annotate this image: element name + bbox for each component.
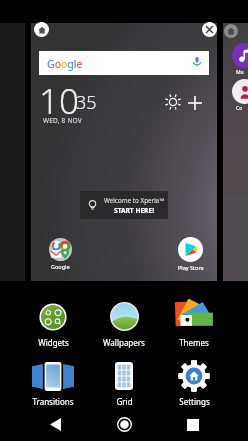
staticText: Grid [116, 396, 133, 407]
button[interactable]: Recent apps [173, 408, 213, 441]
staticText: 35 [76, 90, 97, 115]
button[interactable]: Transitions [18, 356, 88, 408]
button[interactable]: Grid [89, 356, 159, 408]
staticText: WED, 8 NOV [43, 116, 82, 125]
button[interactable]: Home [104, 408, 144, 441]
staticText: Google [51, 263, 70, 270]
button[interactable]: Back [35, 408, 75, 441]
button[interactable]: Next page [223, 23, 248, 281]
button[interactable]: Settings [159, 355, 229, 407]
staticText: Co [236, 105, 243, 112]
button[interactable]: Widgets [18, 297, 88, 349]
button[interactable]: Wallpapers [89, 296, 159, 348]
staticText: Transitions [32, 396, 74, 407]
button[interactable]: Google [39, 51, 209, 75]
staticText: START HERE! [114, 206, 154, 215]
staticText: Mu [236, 69, 244, 76]
button[interactable]: Google [44, 238, 77, 270]
button[interactable]: Remove page [202, 22, 217, 37]
staticText: Play Store [178, 264, 204, 271]
staticText: Wallpapers [103, 337, 145, 348]
button[interactable]: Welcome to Xperia™ [80, 191, 168, 219]
staticText: Themes [179, 337, 209, 348]
button[interactable]: Set as home screen [34, 22, 49, 37]
button[interactable]: Themes [159, 294, 229, 346]
staticText: 10 [39, 77, 79, 125]
staticText: Welcome to Xperia™ [104, 196, 165, 205]
staticText: Widgets [38, 337, 69, 348]
staticText: Settings [179, 396, 210, 407]
button[interactable]: Play Store [174, 237, 207, 271]
staticText: Google [47, 57, 83, 71]
